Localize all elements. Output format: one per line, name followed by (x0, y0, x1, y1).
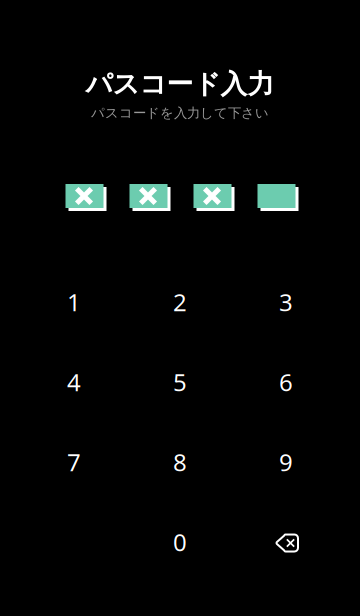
staticText: 3 (279, 286, 293, 318)
staticText: 9 (279, 446, 293, 478)
button[interactable]: 6 (233, 342, 339, 422)
staticText: パスコードを入力して下さい (91, 105, 269, 121)
button[interactable]: 7 (21, 422, 127, 502)
staticText: 0 (173, 526, 187, 558)
button[interactable]: 0 (127, 502, 233, 582)
staticText: 2 (173, 286, 187, 318)
button[interactable]: Delete (233, 502, 339, 582)
button[interactable]: 1 (21, 262, 127, 342)
staticText: 7 (67, 446, 81, 478)
staticText: 1 (67, 286, 81, 318)
button[interactable]: 2 (127, 262, 233, 342)
staticText: 8 (173, 446, 187, 478)
staticText: パスコード入力 (85, 68, 274, 100)
button[interactable]: 8 (127, 422, 233, 502)
staticText: 4 (67, 366, 81, 398)
button[interactable]: 9 (233, 422, 339, 502)
staticText: 5 (173, 366, 187, 398)
button[interactable]: 4 (21, 342, 127, 422)
button[interactable]: 5 (127, 342, 233, 422)
button[interactable]: 3 (233, 262, 339, 342)
staticText: 6 (279, 366, 293, 398)
